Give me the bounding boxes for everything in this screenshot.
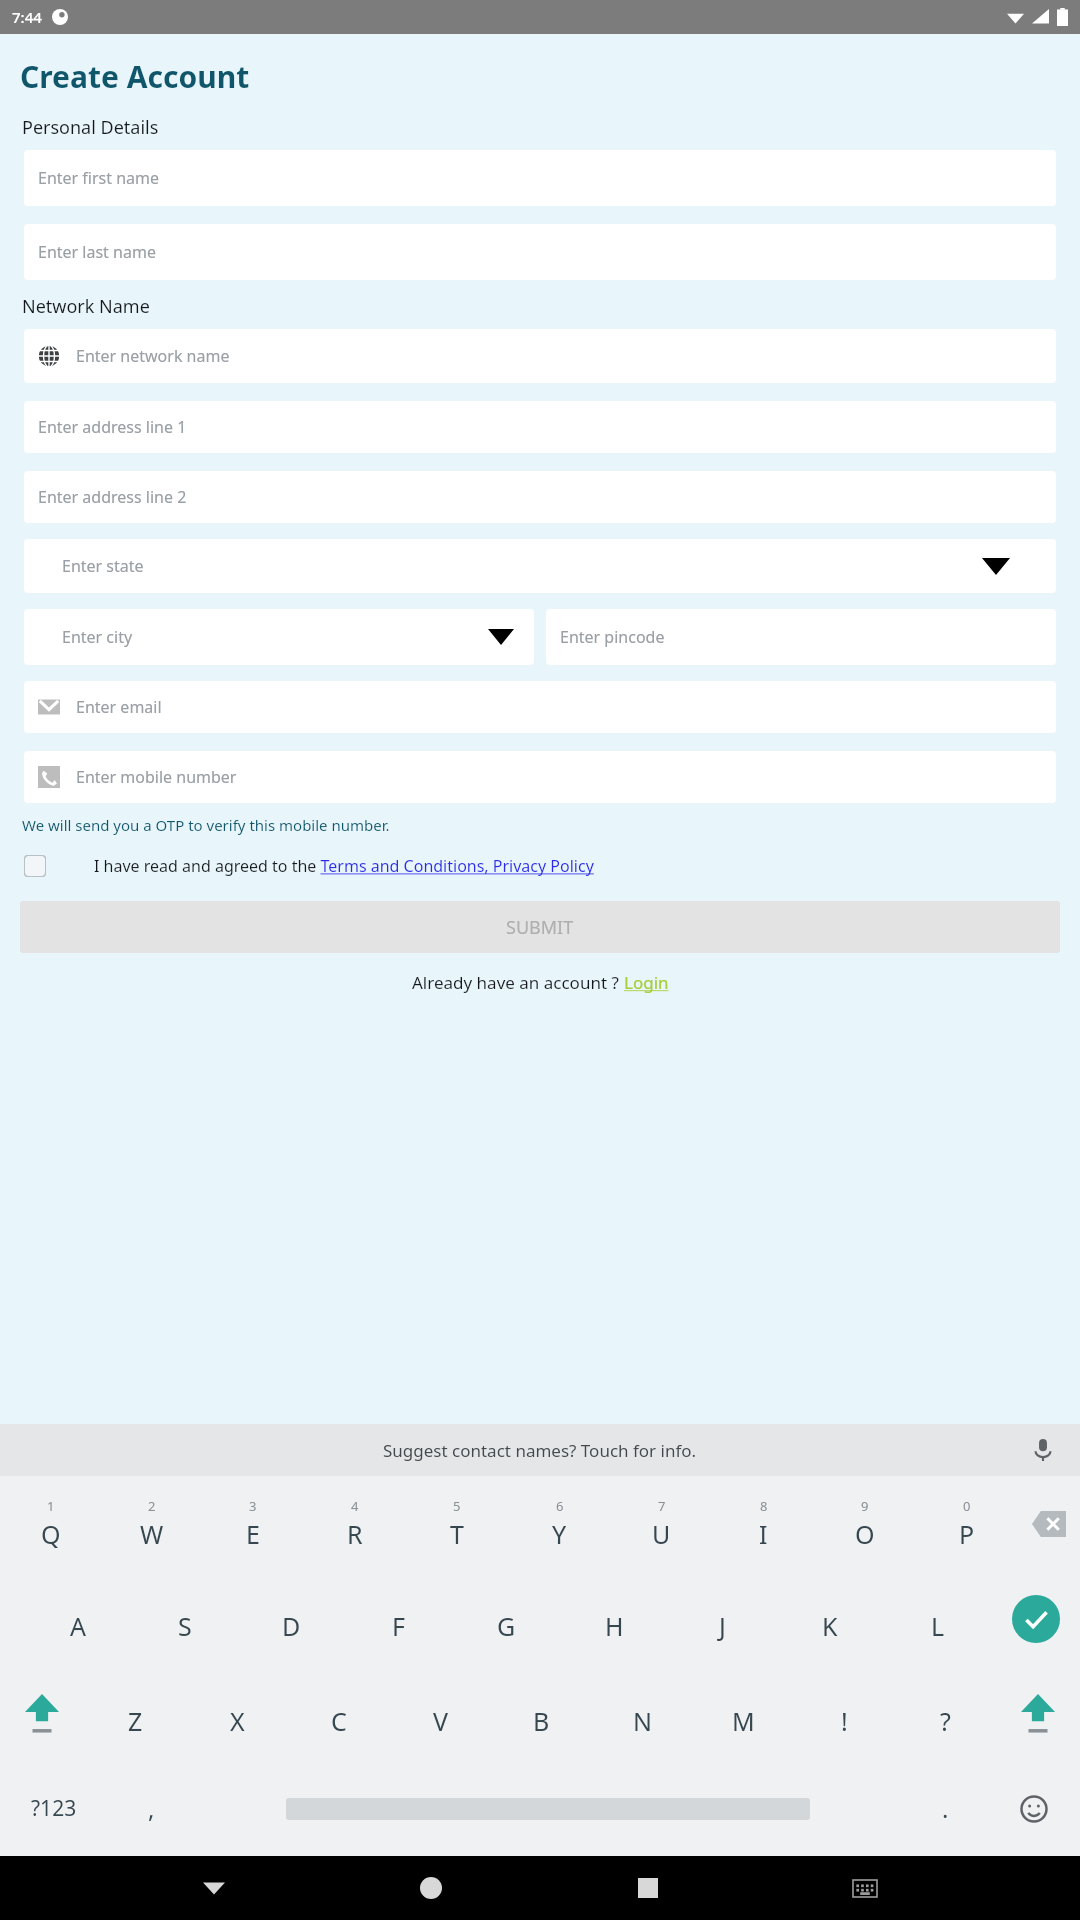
button[interactable]: 0	[916, 1476, 1018, 1571]
staticText: We will send you a OTP to verify this mo…	[22, 815, 390, 835]
staticText: Create Account	[20, 56, 250, 97]
button[interactable]: B	[491, 1666, 592, 1761]
staticText: Q	[41, 1517, 61, 1551]
button[interactable]: N	[592, 1666, 693, 1761]
button[interactable]: Shift	[996, 1666, 1080, 1761]
button[interactable]: Enter first name	[24, 150, 1056, 206]
button[interactable]: 9	[814, 1476, 916, 1571]
button[interactable]: C	[288, 1666, 390, 1761]
button[interactable]: 3	[202, 1476, 304, 1571]
staticText: Already have an account ?	[412, 971, 624, 994]
button[interactable]: A	[24, 1571, 131, 1666]
button[interactable]: Switch keyboard	[845, 1868, 885, 1908]
button[interactable]: J	[668, 1571, 776, 1666]
staticText: M	[732, 1704, 755, 1738]
staticText: V	[433, 1704, 449, 1738]
staticText: P	[959, 1517, 975, 1551]
staticText: T	[450, 1517, 464, 1551]
button[interactable]: 7	[610, 1476, 712, 1571]
button[interactable]: 8	[712, 1476, 814, 1571]
button[interactable]: X	[186, 1666, 288, 1761]
staticText: 4	[351, 1497, 359, 1515]
button[interactable]: Enter network name	[24, 329, 1056, 383]
button[interactable]: Enter last name	[24, 224, 1056, 280]
button[interactable]: F	[345, 1571, 452, 1666]
staticText: F	[392, 1609, 405, 1643]
staticText: J	[719, 1609, 726, 1643]
button[interactable]: ?123	[0, 1761, 108, 1856]
button[interactable]: Enter state	[24, 539, 1056, 593]
button[interactable]: Emoji	[988, 1761, 1080, 1856]
staticText: ?123	[31, 1794, 77, 1823]
button[interactable]: !	[794, 1666, 895, 1761]
button[interactable]: Enter mobile number	[24, 751, 1056, 803]
staticText: 0	[963, 1497, 971, 1515]
button[interactable]: Voice input	[1028, 1435, 1058, 1465]
button[interactable]: V	[390, 1666, 491, 1761]
button[interactable]: Login	[624, 971, 669, 994]
staticText: A	[70, 1609, 86, 1643]
button[interactable]: 2	[101, 1476, 202, 1571]
staticText: Y	[552, 1517, 567, 1551]
staticText: R	[347, 1517, 363, 1551]
button[interactable]: SUBMIT	[20, 901, 1060, 953]
button[interactable]: Recent apps	[628, 1868, 668, 1908]
button[interactable]: 1	[0, 1476, 101, 1571]
staticText: Enter address line 2	[38, 486, 187, 508]
staticText: D	[282, 1609, 301, 1643]
button[interactable]: Enter address line 1	[24, 401, 1056, 453]
button[interactable]: Home	[411, 1868, 451, 1908]
staticText: Network Name	[22, 294, 150, 319]
button[interactable]: Back	[194, 1868, 234, 1908]
button[interactable]: G	[452, 1571, 560, 1666]
staticText: 5	[453, 1497, 461, 1515]
button[interactable]: I have read and agreed to the Terms and …	[94, 855, 598, 877]
button[interactable]: Shift	[0, 1666, 84, 1761]
staticText: I	[759, 1517, 768, 1551]
staticText: H	[605, 1609, 624, 1643]
staticText: O	[855, 1517, 875, 1551]
button[interactable]: H	[560, 1571, 668, 1666]
button[interactable]: Backspace	[1018, 1476, 1080, 1571]
button[interactable]: 6	[508, 1476, 610, 1571]
staticText: .	[942, 1792, 949, 1825]
staticText: Enter state	[62, 555, 144, 577]
staticText: 3	[249, 1497, 257, 1515]
staticText: U	[652, 1517, 671, 1551]
button[interactable]: Enter email	[24, 681, 1056, 733]
staticText: E	[246, 1517, 260, 1551]
staticText: Enter first name	[38, 167, 160, 189]
button[interactable]: Agree to terms checkbox	[24, 855, 46, 877]
button[interactable]: Enter city	[24, 609, 534, 665]
button[interactable]: Comma	[108, 1761, 194, 1856]
staticText: 9	[861, 1497, 869, 1515]
staticText: SUBMIT	[506, 915, 574, 940]
staticText: Enter mobile number	[76, 766, 237, 788]
button[interactable]: D	[238, 1571, 345, 1666]
button[interactable]: Space	[194, 1761, 902, 1856]
button[interactable]: 5	[406, 1476, 508, 1571]
staticText: G	[497, 1609, 516, 1643]
staticText: B	[533, 1704, 550, 1738]
staticText: Enter city	[62, 626, 133, 648]
staticText: X	[230, 1704, 245, 1738]
button[interactable]: Enter pincode	[546, 609, 1056, 665]
button[interactable]: Z	[84, 1666, 186, 1761]
button[interactable]: Enter address line 2	[24, 471, 1056, 523]
staticText: 7	[658, 1497, 666, 1515]
staticText: ?	[940, 1704, 951, 1738]
button[interactable]: M	[693, 1666, 794, 1761]
button[interactable]: ?	[895, 1666, 996, 1761]
staticText: S	[178, 1609, 192, 1643]
staticText: Suggest contact names? Touch for info.	[383, 1439, 697, 1462]
button[interactable]: S	[131, 1571, 238, 1666]
staticText: N	[633, 1704, 653, 1738]
staticText: 1	[47, 1497, 55, 1515]
staticText: 7:44	[12, 7, 42, 27]
button[interactable]: Period	[902, 1761, 988, 1856]
button[interactable]: 4	[304, 1476, 406, 1571]
staticText: 6	[556, 1497, 564, 1515]
button[interactable]: L	[884, 1571, 992, 1666]
button[interactable]: K	[776, 1571, 884, 1666]
button[interactable]: Enter	[992, 1571, 1080, 1666]
